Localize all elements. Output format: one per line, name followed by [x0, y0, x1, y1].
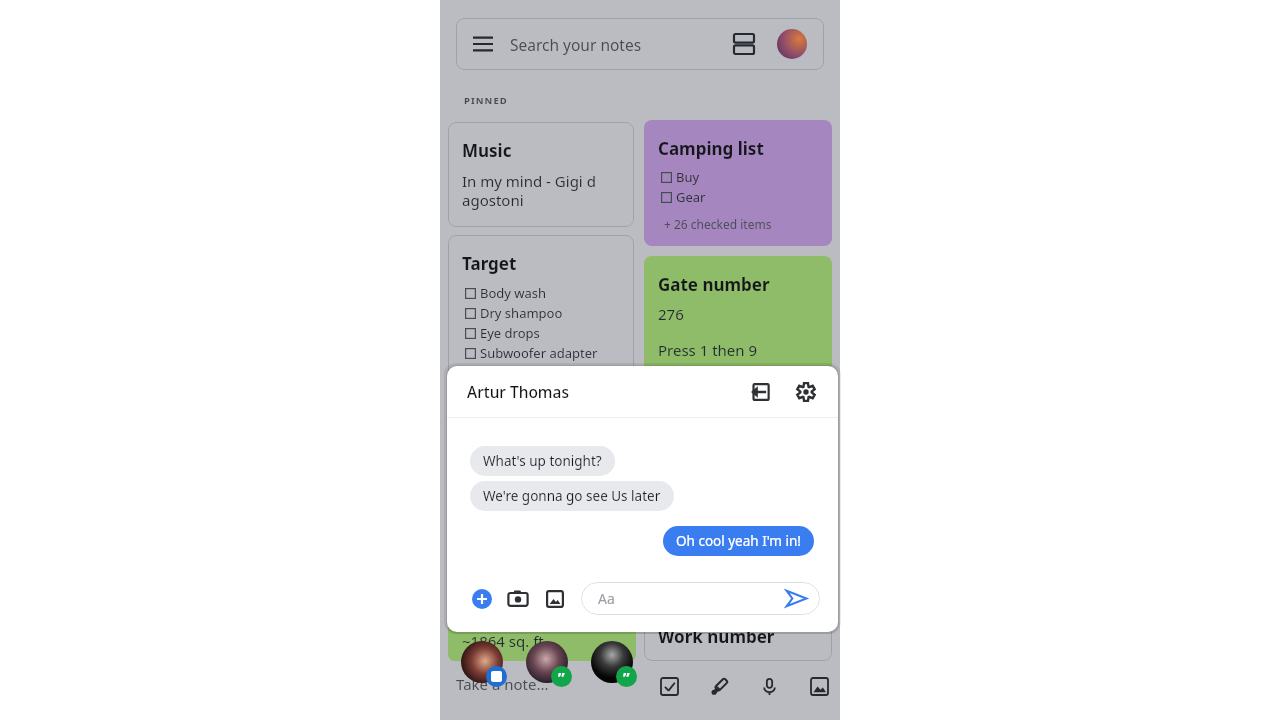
staticText: Buy	[676, 168, 700, 186]
button[interactable]: Toggle view	[729, 29, 759, 59]
button[interactable]: Open in app	[742, 374, 778, 410]
button[interactable]: Oh cool yeah I'm in!	[663, 526, 814, 556]
button[interactable]: Menu	[470, 31, 496, 57]
staticText: Aa	[598, 589, 615, 608]
staticText: Dry shampoo	[480, 304, 563, 322]
staticText: Eye drops	[480, 324, 540, 342]
staticText: Work number	[658, 625, 775, 648]
staticText: Body wash	[480, 284, 547, 302]
staticText: Oh cool yeah I'm in!	[676, 532, 801, 550]
staticText: Subwoofer adapter	[480, 344, 598, 362]
staticText: Gate number	[658, 273, 770, 296]
staticText: + 26 checked items	[664, 216, 772, 232]
button[interactable]: We're gonna go see Us later	[470, 481, 674, 511]
button[interactable]: Open chat	[526, 641, 568, 683]
button[interactable]: Camping list	[644, 120, 832, 246]
button[interactable]: Work number	[644, 608, 832, 661]
button[interactable]: Camera	[508, 589, 528, 609]
button[interactable]: Gate number	[644, 256, 832, 416]
staticText: PINNED	[464, 94, 508, 107]
staticText: Artur Thomas	[467, 381, 569, 402]
button[interactable]: Open chat	[461, 641, 503, 683]
staticText: Gear	[676, 188, 706, 206]
staticText: Take a note...	[456, 674, 549, 694]
staticText: In my mind - Gigi d agostoni	[462, 171, 623, 210]
button[interactable]: New drawing	[694, 661, 744, 711]
button[interactable]: Add	[472, 589, 492, 609]
button[interactable]: Open chat	[591, 641, 633, 683]
staticText: 276	[658, 304, 684, 324]
staticText: ~1864 sq. ft.	[462, 631, 548, 651]
staticText: We're gonna go see Us later	[483, 487, 661, 505]
button[interactable]: Settings	[788, 374, 824, 410]
button[interactable]: Menu	[456, 18, 824, 70]
staticText: Music	[462, 139, 512, 162]
staticText: Press 1 then 9	[658, 340, 758, 360]
button[interactable]: New list	[644, 661, 694, 711]
staticText: Target	[462, 252, 517, 275]
button[interactable]: Music	[448, 122, 634, 227]
staticText: ”	[623, 667, 630, 687]
button[interactable]: Target	[448, 235, 634, 450]
button[interactable]: ~1864 sq. ft.	[448, 580, 636, 662]
button[interactable]: New image note	[794, 661, 844, 711]
button[interactable]: What's up tonight?	[470, 446, 615, 476]
button[interactable]: Gallery	[545, 589, 565, 609]
staticText: What's up tonight?	[483, 452, 602, 470]
staticText: ”	[558, 667, 565, 687]
staticText: Camping list	[658, 137, 764, 160]
button[interactable]: Aa	[581, 582, 820, 615]
staticText: Search your notes	[510, 34, 642, 55]
button[interactable]: Account	[777, 29, 807, 59]
button[interactable]: New voice note	[744, 661, 794, 711]
